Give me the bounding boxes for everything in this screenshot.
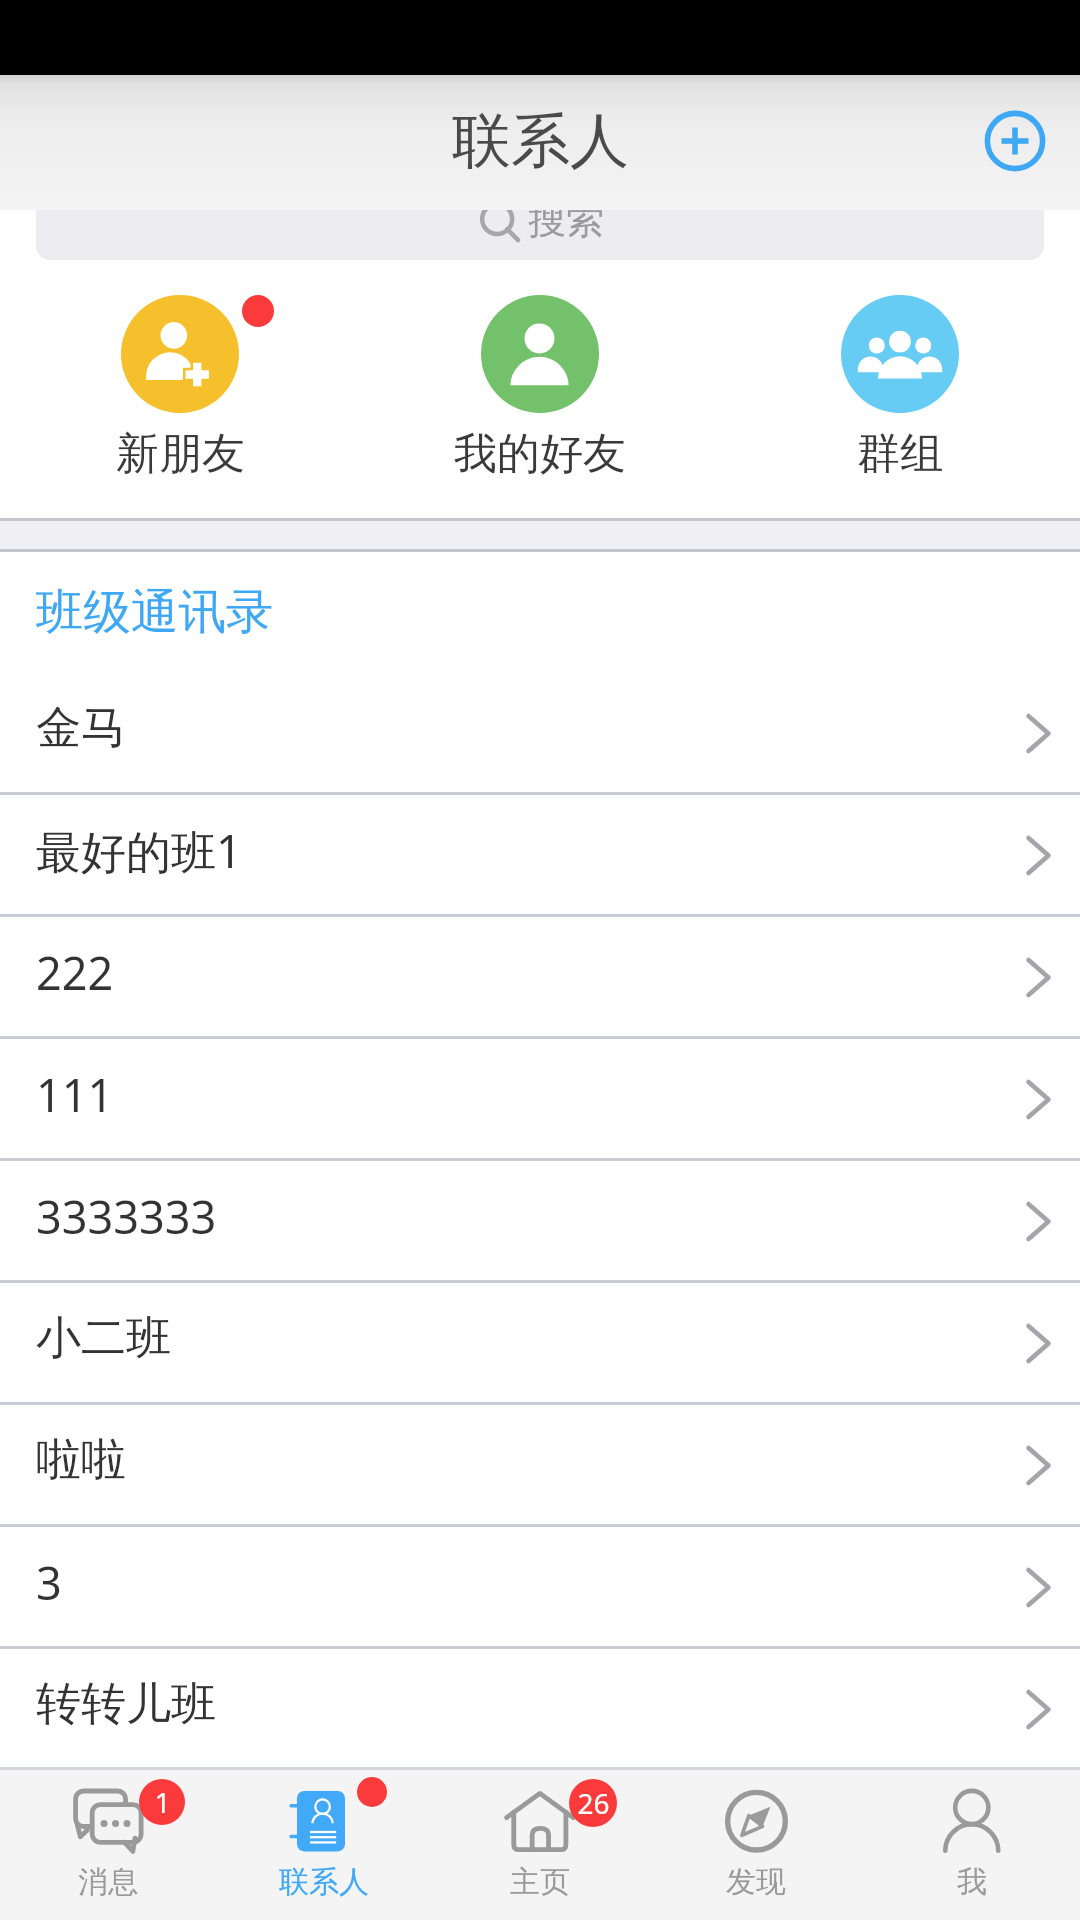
button[interactable]: Add contact [975,101,1055,181]
button[interactable]: 3333333 [0,1161,1080,1283]
button[interactable]: 联系人 [216,1770,432,1920]
staticText: 3333333 [36,1186,217,1247]
button[interactable]: 群组 [720,260,1080,518]
button[interactable]: 3 [0,1527,1080,1649]
staticText: 我 [957,1863,987,1901]
staticText: 111 [36,1064,114,1125]
staticText: 最好的班1 [36,820,242,881]
button[interactable]: 我的好友 [360,260,720,518]
staticText: 联系人 [279,1863,369,1901]
button[interactable]: 最好的班1 [0,795,1080,917]
staticText: 联系人 [452,104,629,178]
staticText: 主页 [510,1863,570,1901]
staticText: 啦啦 [36,1432,126,1489]
staticText: 转转儿班 [36,1676,216,1733]
staticText: 小二班 [36,1310,171,1367]
staticText: 群组 [857,427,943,481]
button[interactable]: 我 [864,1770,1080,1920]
staticText: 1 [154,1783,171,1821]
staticText: 我的好友 [454,427,626,481]
button[interactable]: 消息 [0,1770,216,1920]
button[interactable]: 转转儿班 [0,1649,1080,1771]
staticText: 金马 [36,700,126,757]
button[interactable]: 111 [0,1039,1080,1161]
button[interactable]: 222 [0,917,1080,1039]
button[interactable]: 主页 [432,1770,648,1920]
button[interactable]: 发现 [648,1770,864,1920]
button[interactable]: 小二班 [0,1283,1080,1405]
button[interactable]: Search [36,176,1044,260]
staticText: 发现 [726,1863,786,1901]
staticText: 3 [36,1552,62,1613]
staticText: 222 [36,942,114,1003]
staticText: 搜索 [528,196,604,244]
staticText: 班级通讯录 [36,582,274,642]
button[interactable]: 啦啦 [0,1405,1080,1527]
button[interactable]: 新朋友 [0,260,360,518]
staticText: 消息 [78,1863,138,1901]
button[interactable]: 金马 [0,673,1080,795]
staticText: 26 [577,1784,610,1822]
staticText: 新朋友 [116,427,245,481]
